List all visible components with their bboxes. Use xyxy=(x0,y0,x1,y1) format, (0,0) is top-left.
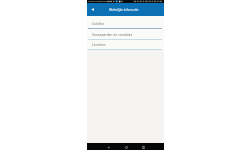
staticText: Alleen noodoproepen xyxy=(88,0,112,3)
staticText: Licenties xyxy=(92,43,106,47)
button[interactable]: Voorwaarden en condities xyxy=(87,29,164,40)
button[interactable]: Back xyxy=(89,6,96,13)
button[interactable]: Back xyxy=(106,145,111,150)
staticText: Wettelijke informatie xyxy=(109,8,139,12)
staticText: Colofon xyxy=(92,22,105,26)
button[interactable]: Recent apps xyxy=(141,145,146,150)
button[interactable]: Home xyxy=(124,145,129,150)
staticText: Voorwaarden en condities xyxy=(92,33,133,37)
button[interactable]: Colofon xyxy=(87,16,164,29)
button[interactable]: Licenties xyxy=(87,40,164,50)
